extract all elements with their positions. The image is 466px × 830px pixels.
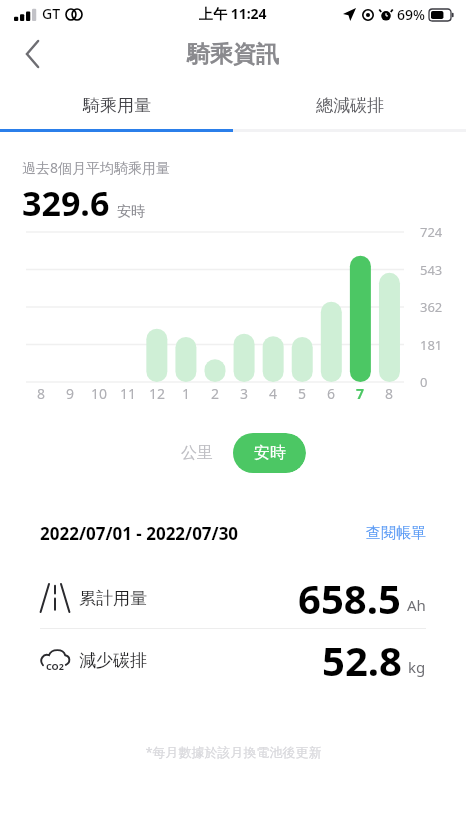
staticText: 0 bbox=[420, 373, 428, 391]
staticText: 騎乘資訊 bbox=[187, 40, 279, 69]
staticText: 公里 bbox=[181, 443, 213, 463]
staticText: CO2 bbox=[46, 660, 64, 672]
staticText: 6 bbox=[327, 384, 336, 403]
staticText: 累計用量 bbox=[79, 588, 147, 609]
staticText: 7 bbox=[356, 384, 365, 403]
button[interactable]: 公里 bbox=[160, 433, 233, 473]
staticText: 騎乘用量 bbox=[83, 95, 151, 116]
staticText: 上午 11:24 bbox=[199, 4, 267, 23]
staticText: 329.6 bbox=[22, 180, 110, 226]
staticText: 9 bbox=[66, 384, 75, 403]
staticText: 724 bbox=[420, 223, 443, 241]
staticText: 過去8個月平均騎乘用量 bbox=[22, 158, 171, 177]
staticText: kg bbox=[408, 657, 426, 677]
staticText: 2 bbox=[211, 384, 220, 403]
button[interactable]: 總減碳排 bbox=[233, 86, 466, 132]
button[interactable]: 安時 bbox=[233, 433, 306, 473]
staticText: 3 bbox=[240, 384, 249, 403]
staticText: 1 bbox=[182, 384, 191, 403]
button[interactable]: Back bbox=[10, 31, 56, 77]
staticText: 總減碳排 bbox=[316, 95, 384, 116]
staticText: GT bbox=[42, 4, 61, 23]
staticText: 4 bbox=[269, 384, 278, 403]
staticText: 362 bbox=[420, 298, 443, 316]
staticText: 查閱帳單 bbox=[366, 524, 426, 543]
staticText: 69% bbox=[397, 5, 425, 24]
staticText: 5 bbox=[298, 384, 307, 403]
staticText: 2022/07/01 - 2022/07/30 bbox=[40, 522, 239, 545]
staticText: 52.8 bbox=[322, 633, 402, 687]
staticText: 安時 bbox=[117, 203, 145, 221]
staticText: *每月數據於該月換電池後更新 bbox=[145, 743, 322, 761]
staticText: 11 bbox=[120, 384, 137, 403]
staticText: 543 bbox=[420, 261, 443, 279]
staticText: 10 bbox=[91, 384, 108, 403]
staticText: 12 bbox=[149, 384, 166, 403]
button[interactable]: 累計用量 bbox=[40, 568, 426, 628]
staticText: 181 bbox=[420, 336, 443, 354]
staticText: 安時 bbox=[254, 443, 286, 463]
staticText: 8 bbox=[37, 384, 46, 403]
button[interactable]: 騎乘用量 bbox=[0, 86, 233, 132]
staticText: Ah bbox=[407, 595, 426, 615]
button[interactable]: 減少碳排 bbox=[40, 629, 426, 691]
staticText: 8 bbox=[385, 384, 394, 403]
button[interactable]: 查閱帳單 bbox=[366, 524, 426, 543]
staticText: 658.5 bbox=[298, 571, 401, 625]
staticText: 減少碳排 bbox=[79, 650, 147, 671]
